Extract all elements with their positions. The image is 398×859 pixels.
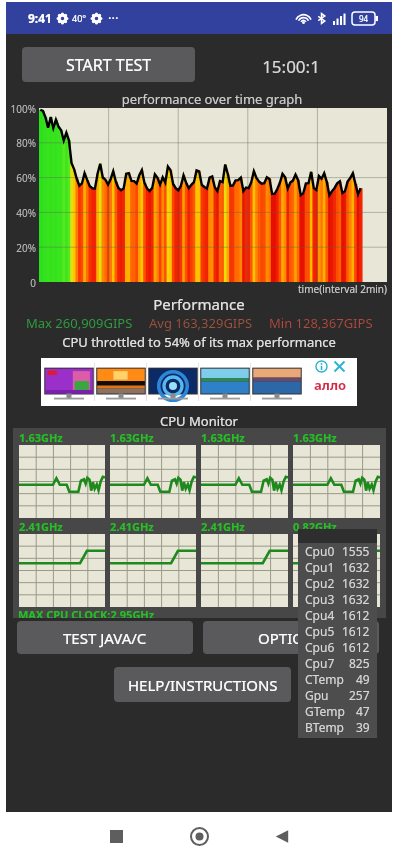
staticText: time(interval 2min) [287,282,387,296]
staticText: MAX CPU CLOCK:2.95GHz [18,607,155,618]
staticText: aлло [314,376,347,394]
staticText: 80% [6,136,36,150]
staticText: 2.41GHz [201,519,245,534]
staticText: 1.63GHz [110,430,154,445]
staticText: Max 260,909GIPS [26,314,133,332]
staticText: Cpu5 [305,623,335,639]
staticText: CPU throttled to 54% of its max performa… [6,333,392,351]
staticText: Cpu4 [305,607,335,623]
staticText: 1.63GHz [293,430,337,445]
staticText: 39 [356,719,370,735]
staticText: CPU Monitor [6,412,392,430]
staticText: 40% [6,206,36,220]
staticText: HELP/INSTRUCTIONS [128,675,278,695]
staticText: 49 [356,671,370,687]
staticText: BTemp [305,719,345,735]
staticText: START TEST [66,54,152,76]
other: Close ad [333,360,346,373]
staticText: Cpu1 [305,559,335,575]
staticText: 40° [72,12,87,24]
staticText: 0.82GHz [293,519,337,534]
staticText: 20% [6,241,36,255]
staticText: 2.41GHz [110,519,154,534]
staticText: Cpu6 [305,639,335,655]
staticText: 1632 [342,575,370,591]
staticText: 0 [6,276,36,290]
staticText: 60% [6,171,36,185]
staticText: 100% [6,102,36,116]
staticText: GTemp [305,703,345,719]
staticText: 9:41 [28,10,52,26]
staticText: 47 [356,703,370,719]
staticText: 1632 [342,559,370,575]
staticText: 1612 [342,623,370,639]
button[interactable]: HELP/INSTRUCTIONS [114,667,291,702]
staticText: 1612 [342,639,370,655]
staticText: CTemp [305,671,344,687]
button[interactable]: Ad info [41,358,357,406]
staticText: 1.63GHz [201,430,245,445]
staticText: OPTIONS [258,628,324,648]
staticText: ··· [108,9,119,27]
staticText: 1555 [342,543,370,559]
staticText: 94 [359,13,369,24]
staticText: Gpu [305,687,329,703]
button[interactable]: Back [259,813,305,859]
other: Ad info [315,360,328,373]
staticText: 257 [349,687,370,703]
staticText: 2.41GHz [19,519,63,534]
button[interactable]: TEST JAVA/C [17,621,193,654]
staticText: 825 [349,655,370,671]
staticText: Min 128,367GIPS [269,314,373,332]
button[interactable]: START TEST [22,47,195,82]
staticText: Cpu7 [305,655,335,671]
staticText: TEST JAVA/C [63,628,147,648]
staticText: 1612 [342,607,370,623]
staticText: 1632 [342,591,370,607]
button[interactable]: Recents [93,813,139,859]
staticText: Cpu3 [305,591,335,607]
button[interactable]: Home [176,813,222,859]
staticText: Performance [6,294,392,314]
staticText: 15:00:1 [206,55,376,78]
staticText: Avg 163,329GIPS [149,314,253,332]
staticText: Cpu2 [305,575,335,591]
staticText: Cpu0 [305,543,335,559]
staticText: performance over time graph [33,90,391,108]
staticText: 1.63GHz [19,430,63,445]
button[interactable]: OPTIONS [203,621,379,654]
